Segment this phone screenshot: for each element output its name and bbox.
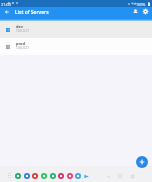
button[interactable]: Recent apps <box>128 172 136 180</box>
button[interactable]: Back <box>104 172 112 180</box>
button[interactable]: App shortcut <box>24 173 30 179</box>
button[interactable]: Settings <box>140 6 150 16</box>
staticText: dev <box>16 24 23 29</box>
staticText: prod <box>16 41 26 46</box>
staticText: 10.0.0.17 <box>16 29 30 33</box>
button[interactable]: Dev server <box>0 21 152 38</box>
button[interactable]: App shortcut <box>67 173 73 179</box>
staticText: 10.0.0.21 <box>16 46 30 50</box>
button[interactable]: App shortcut <box>75 173 81 179</box>
button[interactable]: App shortcut <box>50 173 56 179</box>
button[interactable]: Account <box>130 6 140 16</box>
button[interactable]: App shortcut <box>58 173 64 179</box>
staticText: List of Servers <box>15 9 49 16</box>
button[interactable]: App shortcut <box>32 173 38 179</box>
button[interactable]: Prod server <box>0 38 152 55</box>
staticText: 100% <box>136 2 146 7</box>
button[interactable]: Home <box>116 172 124 180</box>
staticText: 21:03 <box>1 2 11 7</box>
button[interactable]: Send <box>83 173 89 179</box>
button[interactable]: Add server <box>136 156 148 168</box>
button[interactable]: App shortcut <box>41 173 47 179</box>
button[interactable]: App shortcut <box>15 173 21 179</box>
button[interactable]: Navigate up <box>1 6 12 17</box>
